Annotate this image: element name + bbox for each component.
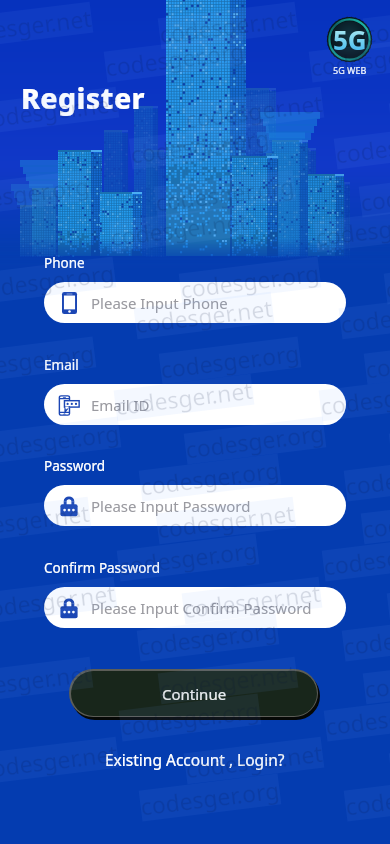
staticText: codesger.net [0,497,91,544]
button[interactable]: Please Input Password [44,485,346,526]
staticText: codesger.org [342,614,390,661]
staticText: 5G WEB [333,64,367,76]
staticText: codesger.org [159,337,301,384]
staticText: codesger.net [314,205,390,252]
staticText: codesger.org [179,257,321,304]
staticText: codesger.net [0,87,119,134]
staticText: codesger.org [334,122,390,169]
staticText: codesger.net [339,292,390,339]
staticText: codesger.net [109,205,249,252]
staticText: codesger.org [309,35,390,82]
button[interactable]: Existing Account , Login? [0,749,390,770]
staticText: codesger.net [156,497,296,544]
staticText: Email [44,356,79,374]
button[interactable]: Please Input Phone [44,282,346,323]
staticText: codesger.net [387,577,390,624]
staticText: codesger.net [184,87,324,134]
staticText: codesger.org [0,337,96,384]
staticText: codesger.org [322,534,390,581]
staticText: codesger.net [158,2,298,49]
staticText: codesger.org [324,694,390,741]
staticText: codesger.org [117,534,259,581]
staticText: codesger.org [129,122,271,169]
staticText: codesger.org [104,35,246,82]
staticText: Register [21,79,146,118]
staticText: codesger.org [137,614,279,661]
staticText: codesger.net [114,374,254,421]
button[interactable]: Email ID [44,384,346,425]
staticText: Email ID [91,395,150,415]
staticText: codesger.org [344,774,390,821]
staticText: Existing Account , Login? [105,749,285,770]
staticText: codesger.net [389,87,390,134]
staticText: codesger.org [384,257,390,304]
staticText: codesger.net [0,657,93,704]
staticText: codesger.net [0,577,117,624]
staticText: codesger.org [359,170,390,217]
staticText: Password [44,457,106,475]
staticText: codesger.org [139,774,281,821]
staticText: Please Input Password [91,496,251,516]
staticText: Confirm Password [44,559,160,577]
staticText: Please Input Phone [91,293,228,313]
staticText: codesger.net [0,737,119,784]
staticText: Phone [44,254,85,272]
staticText: codesger.org [0,417,121,464]
staticText: codesger.org [364,337,390,384]
staticText: codesger.org [119,694,261,741]
staticText: Continue [162,684,227,704]
staticText: codesger.org [344,454,390,501]
other: 5G WEB logo [327,17,372,62]
staticText: codesger.org [0,170,91,217]
staticText: codesger.org [0,257,116,304]
staticText: 5G [333,22,367,57]
staticText: codesger.net [361,497,390,544]
staticText: codesger.net [134,292,274,339]
staticText: codesger.net [0,2,93,49]
staticText: codesger.org [184,417,326,464]
staticText: codesger.net [363,657,390,704]
button[interactable]: Please Input Confirm Password [44,587,346,628]
staticText: codesger.org [139,454,281,501]
staticText: codesger.net [363,2,390,49]
staticText: codesger.net [158,657,298,704]
staticText: codesger.net [319,374,390,421]
staticText: codesger.net [182,577,322,624]
staticText: codesger.net [184,737,324,784]
button[interactable]: Continue [71,671,317,716]
staticText: codesger.org [154,170,296,217]
staticText: Please Input Confirm Password [91,598,312,618]
